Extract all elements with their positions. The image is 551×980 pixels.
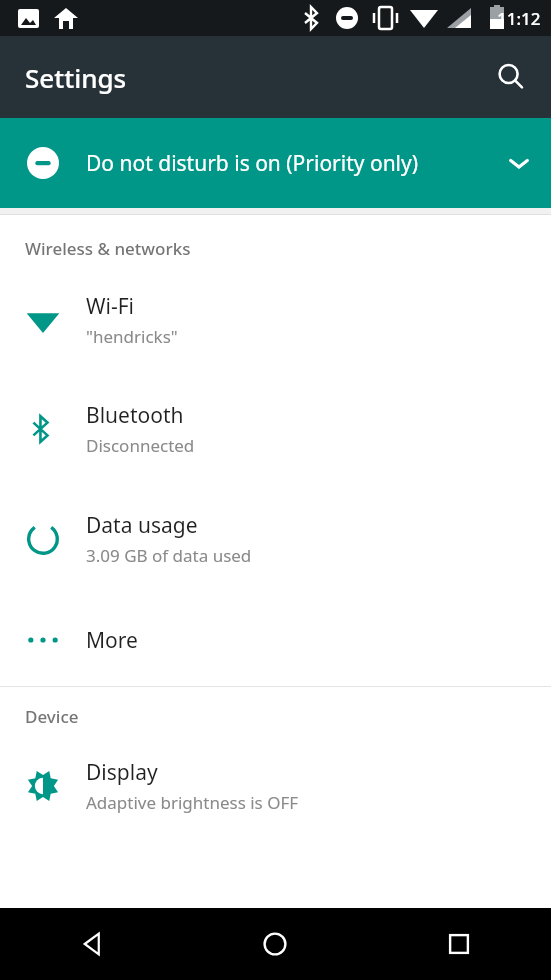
button[interactable]: More bbox=[0, 594, 551, 686]
staticText: Settings bbox=[25, 60, 127, 95]
button[interactable]: Bluetooth bbox=[0, 374, 551, 484]
button[interactable]: Do not disturb is on (Priority only) bbox=[0, 118, 551, 208]
staticText: Device bbox=[25, 705, 79, 728]
button[interactable]: Recents bbox=[367, 908, 551, 980]
staticText: Bluetooth bbox=[86, 401, 184, 430]
button[interactable]: Display bbox=[0, 734, 551, 838]
button[interactable]: Back bbox=[0, 908, 183, 980]
staticText: Do not disturb is on (Priority only) bbox=[86, 149, 469, 178]
button[interactable]: Search bbox=[485, 51, 537, 103]
button[interactable]: Wi-Fi bbox=[0, 266, 551, 374]
staticText: Display bbox=[86, 758, 158, 787]
staticText: Disconnected bbox=[86, 434, 195, 457]
staticText: Wi-Fi bbox=[86, 292, 135, 321]
staticText: 3.09 GB of data used bbox=[86, 544, 252, 567]
staticText: Adaptive brightness is OFF bbox=[86, 791, 299, 814]
button[interactable]: Home bbox=[183, 908, 367, 980]
staticText: Data usage bbox=[86, 511, 198, 540]
staticText: 11:12 bbox=[497, 7, 541, 30]
button[interactable]: Expand bbox=[487, 118, 551, 208]
staticText: Wireless & networks bbox=[25, 237, 191, 260]
staticText: "hendricks" bbox=[86, 325, 178, 348]
staticText: More bbox=[86, 626, 138, 655]
button[interactable]: Data usage bbox=[0, 484, 551, 594]
